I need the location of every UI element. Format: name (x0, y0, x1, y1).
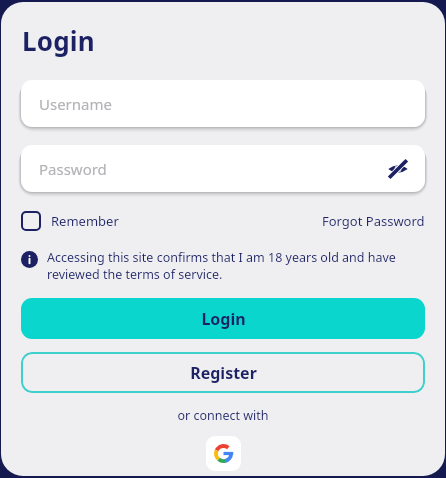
button[interactable]: Register (21, 352, 425, 393)
button[interactable]: Login (21, 298, 425, 339)
staticText: Login (22, 23, 95, 58)
staticText: Login (201, 308, 246, 330)
button[interactable]: Forgot Password (322, 212, 425, 230)
staticText: Accessing this site confirms that I am 1… (47, 249, 423, 282)
button[interactable]: Password (21, 145, 425, 192)
staticText: Register (190, 362, 257, 384)
button[interactable]: Username (21, 80, 425, 127)
staticText: or connect with (1, 407, 445, 424)
staticText: Password (39, 159, 107, 179)
staticText: Remember (51, 212, 119, 230)
button[interactable]: Remember (21, 211, 123, 231)
staticText: Username (39, 94, 112, 114)
button[interactable]: Sign in with Google (206, 436, 241, 471)
staticText: Forgot Password (322, 212, 425, 230)
button[interactable]: Show password (385, 156, 411, 182)
